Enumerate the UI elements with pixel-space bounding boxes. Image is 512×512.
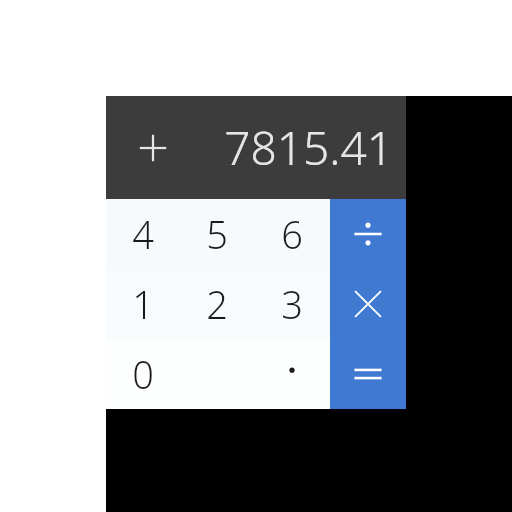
button[interactable]: Divide — [330, 199, 406, 269]
button[interactable]: 3 — [254, 269, 330, 339]
staticText: 2 — [206, 278, 228, 330]
staticText: 6 — [281, 208, 303, 260]
button[interactable]: 0 — [106, 339, 180, 409]
staticText: 1 — [132, 278, 154, 330]
button[interactable]: 4 — [106, 199, 180, 269]
button[interactable]: Current operator plus — [106, 96, 406, 199]
staticText: 5 — [206, 208, 228, 260]
button[interactable]: Multiply — [330, 269, 406, 339]
other: Current operator plus — [136, 131, 170, 165]
staticText: 0 — [132, 348, 154, 400]
button[interactable]: 1 — [106, 269, 180, 339]
button[interactable]: 2 — [180, 269, 254, 339]
staticText: 7815.41 — [224, 116, 393, 179]
staticText: 3 — [281, 278, 303, 330]
button[interactable]: Equals — [330, 339, 406, 409]
button[interactable]: 5 — [180, 199, 254, 269]
staticText: 4 — [132, 208, 154, 260]
button[interactable]: 6 — [254, 199, 330, 269]
button[interactable]: Decimal point — [254, 339, 330, 409]
